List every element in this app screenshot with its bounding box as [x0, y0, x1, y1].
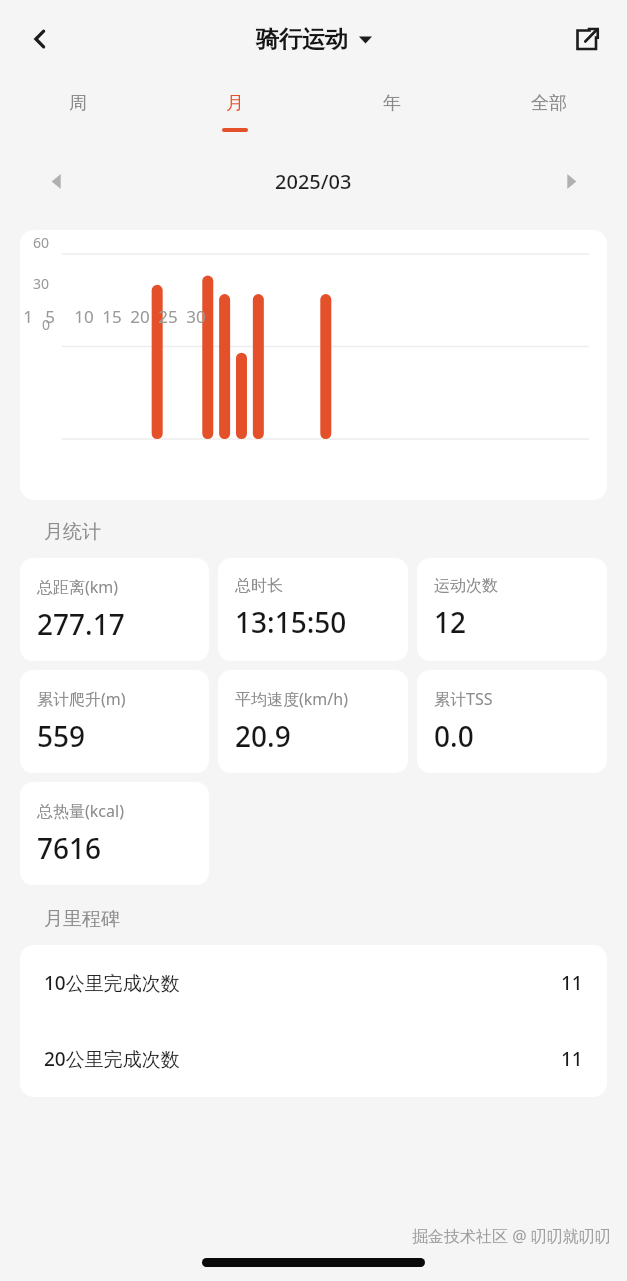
- staticText: 年: [383, 92, 401, 115]
- button[interactable]: 10公里完成次数: [20, 945, 607, 1021]
- button[interactable]: 骑行运动: [256, 25, 372, 54]
- staticText: 总热量(kcal): [37, 800, 124, 822]
- button[interactable]: 总热量(kcal): [20, 782, 209, 885]
- staticText: 559: [37, 717, 86, 755]
- staticText: 累计爬升(m): [37, 688, 126, 710]
- button[interactable]: 累计爬升(m): [20, 670, 209, 773]
- staticText: 11: [561, 1046, 583, 1072]
- button[interactable]: 总时长: [218, 558, 408, 661]
- staticText: 13:15:50: [235, 603, 347, 641]
- staticText: 20.9: [235, 717, 291, 755]
- staticText: 277.17: [37, 605, 125, 643]
- staticText: 30: [186, 305, 206, 328]
- staticText: 周: [69, 92, 87, 115]
- button[interactable]: 运动次数: [417, 558, 607, 661]
- staticText: 1: [23, 305, 33, 328]
- staticText: 总距离(km): [37, 576, 119, 598]
- button[interactable]: 总距离(km): [20, 558, 209, 661]
- staticText: 15: [102, 305, 122, 328]
- staticText: 全部: [531, 92, 567, 115]
- staticText: 运动次数: [434, 576, 498, 596]
- button[interactable]: Share: [561, 14, 611, 64]
- button[interactable]: Next month: [549, 159, 593, 203]
- staticText: 平均速度(km/h): [235, 688, 348, 710]
- staticText: 月统计: [44, 520, 101, 544]
- staticText: 累计TSS: [434, 688, 493, 710]
- button[interactable]: 月: [156, 78, 313, 150]
- staticText: 25: [158, 305, 178, 328]
- button[interactable]: 平均速度(km/h): [218, 670, 408, 773]
- staticText: 60: [33, 233, 50, 252]
- staticText: 10: [74, 305, 94, 328]
- staticText: 7616: [37, 829, 102, 867]
- button[interactable]: 累计TSS: [417, 670, 607, 773]
- staticText: 0.0: [434, 717, 474, 755]
- button[interactable]: 年: [313, 78, 470, 150]
- staticText: 20公里完成次数: [44, 1046, 180, 1072]
- button[interactable]: Previous month: [34, 159, 78, 203]
- button[interactable]: 20公里完成次数: [20, 1021, 607, 1097]
- staticText: 30: [33, 274, 50, 293]
- staticText: 2025/03: [275, 168, 352, 195]
- staticText: 月: [226, 92, 244, 115]
- staticText: 10公里完成次数: [44, 970, 180, 996]
- staticText: 0: [42, 315, 51, 334]
- staticText: 掘金技术社区 @ 叨叨就叨叨: [412, 1225, 611, 1247]
- staticText: 月里程碑: [44, 907, 120, 931]
- staticText: 5: [45, 305, 55, 328]
- staticText: 12: [434, 603, 467, 641]
- button[interactable]: Back: [14, 13, 66, 65]
- staticText: 11: [561, 970, 583, 996]
- staticText: 骑行运动: [256, 25, 348, 54]
- staticText: 总时长: [235, 576, 283, 596]
- staticText: 20: [130, 305, 150, 328]
- button[interactable]: 全部: [470, 78, 627, 150]
- button[interactable]: 周: [0, 78, 156, 150]
